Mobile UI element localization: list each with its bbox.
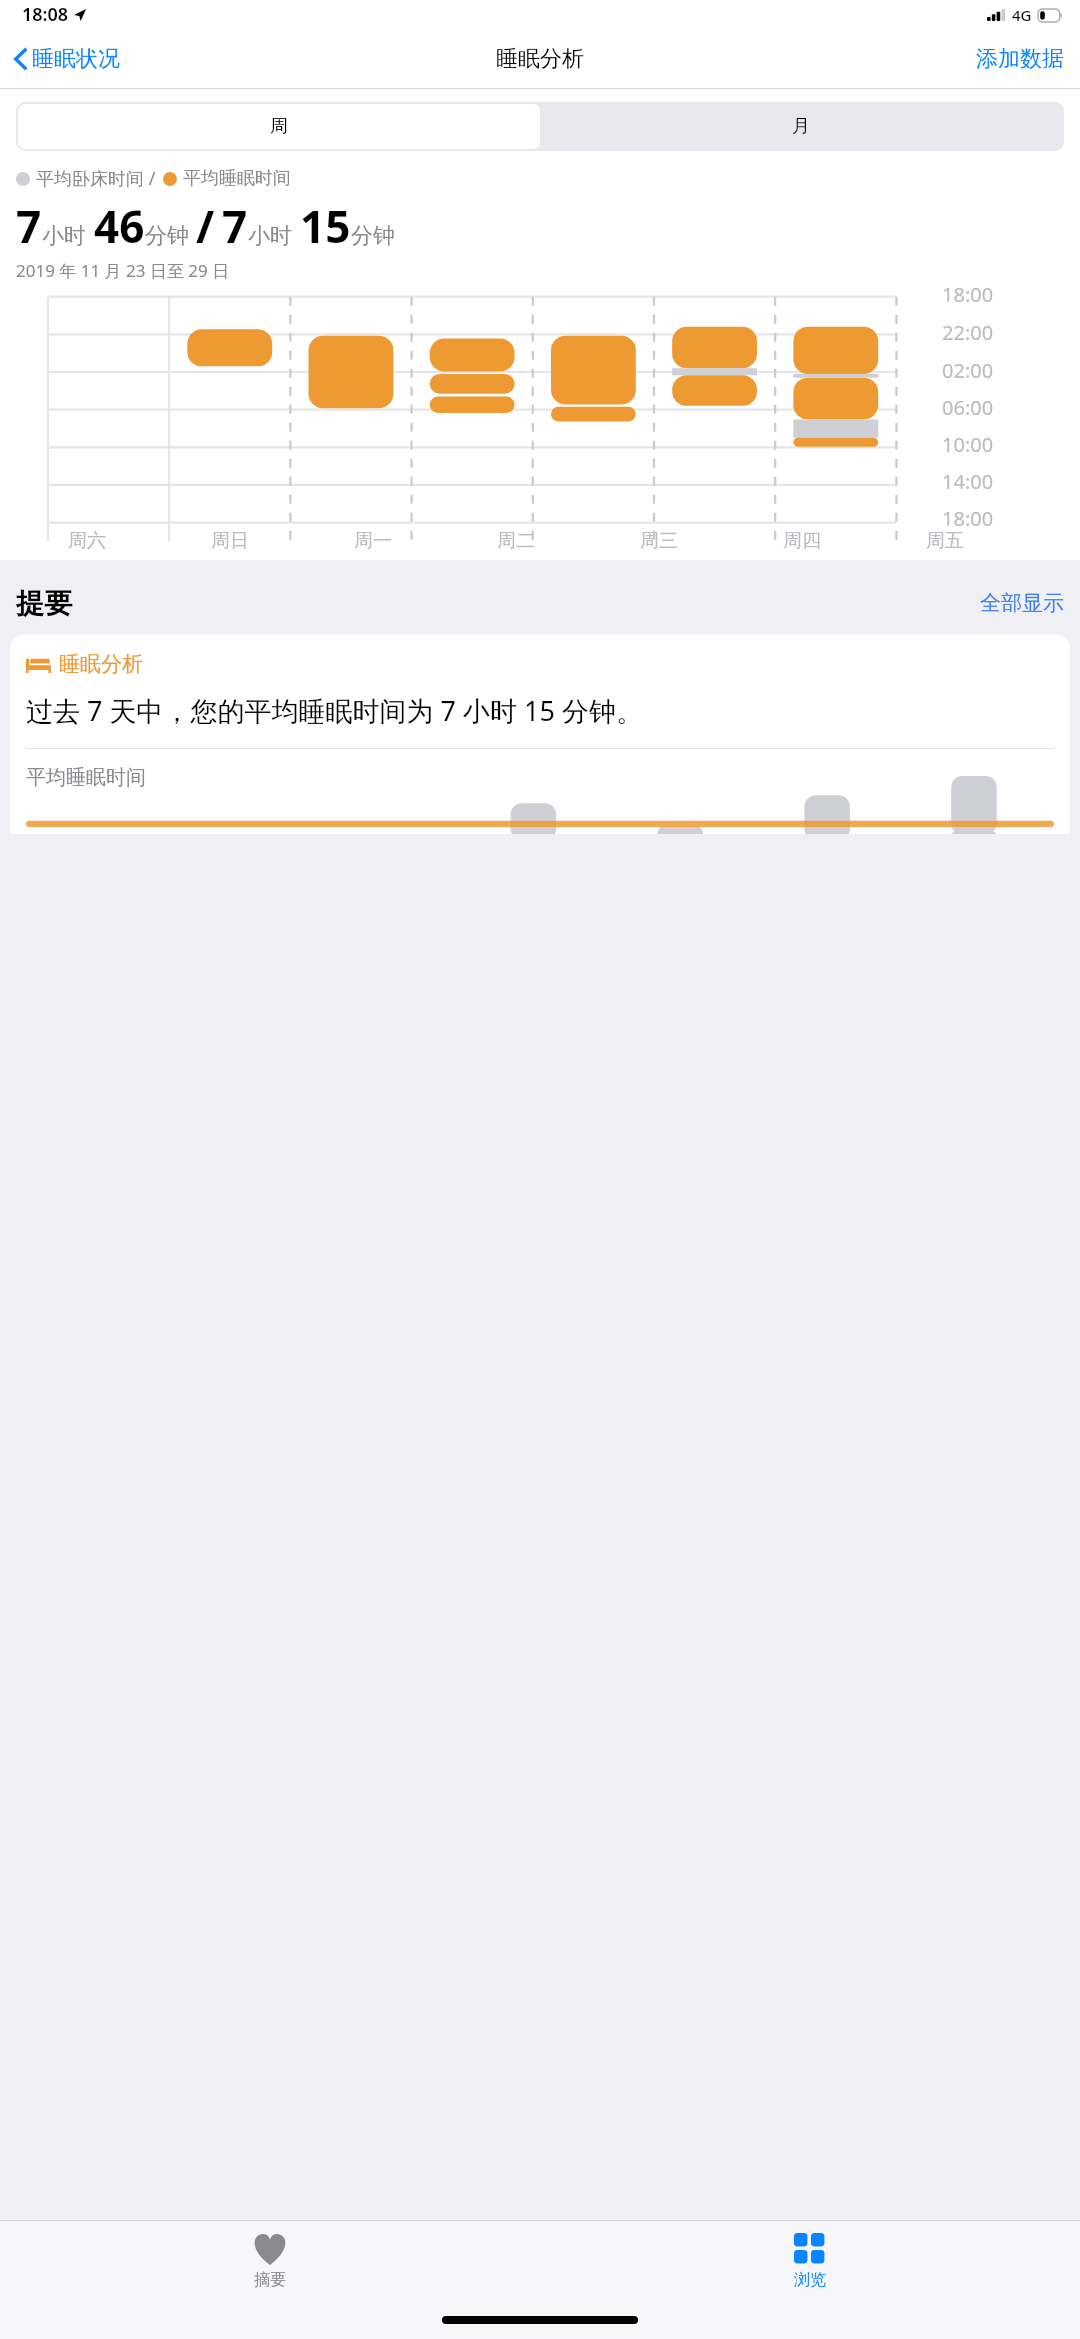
staticText: 7 [16,196,42,256]
staticText: 提要 [16,586,72,621]
staticText: 平均睡眠时间 [26,765,146,790]
staticText: 浏览 [794,2270,826,2290]
staticText: 睡眠分析 [59,651,143,677]
staticText: 周二 [497,529,535,553]
staticText: 周五 [926,529,964,553]
staticText: 小时 [42,222,86,250]
staticText: 18:00 [942,281,994,308]
staticText: 02:00 [942,357,994,384]
button[interactable]: 全部显示 [974,584,1070,622]
staticText: 46 [94,196,145,256]
button[interactable]: 睡眠分析 [10,634,1070,834]
button[interactable]: 添加数据 [960,35,1080,83]
staticText: 10:00 [942,431,994,458]
staticText: 06:00 [942,394,994,421]
staticText: 平均卧床时间 / [36,166,156,191]
staticText: 周四 [783,529,821,553]
staticText: 小时 [248,222,292,250]
staticText: / [196,196,215,256]
button[interactable]: 周 [18,104,540,149]
staticText: 周三 [640,529,678,553]
staticText: 18:08 [22,2,69,27]
staticText: 平均睡眠时间 [183,167,291,190]
staticText: 22:00 [942,319,994,346]
staticText: 14:00 [942,468,994,495]
staticText: 周六 [68,529,106,553]
button[interactable]: 月 [540,104,1062,149]
staticText: 摘要 [254,2270,286,2290]
staticText: 睡眠分析 [496,45,584,73]
button[interactable]: 浏览 [540,2221,1080,2301]
staticText: 2019 年 11 月 23 日至 29 日 [16,259,230,282]
staticText: 4G [1012,5,1032,25]
staticText: 周 [270,115,288,138]
button[interactable]: 摘要 [0,2221,540,2301]
button[interactable]: 返回 睡眠状况 [0,37,130,81]
staticText: 月 [792,115,810,138]
staticText: 15 [300,196,351,256]
staticText: 分钟 [145,222,189,250]
staticText: 分钟 [351,222,395,250]
staticText: 7 [222,196,248,256]
staticText: 周一 [354,529,392,553]
staticText: 18:00 [942,505,994,532]
staticText: 过去 7 天中，您的平均睡眠时间为 7 小时 15 分钟。 [26,692,643,729]
staticText: 周日 [211,529,249,553]
staticText: 睡眠状况 [32,45,120,73]
